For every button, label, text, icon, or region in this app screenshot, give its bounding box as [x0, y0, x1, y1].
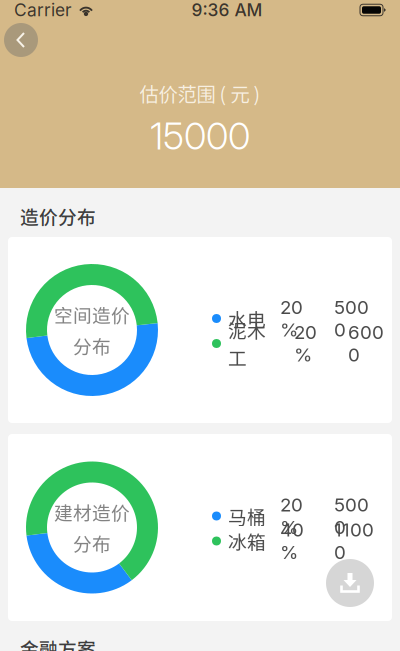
staticText: 15000: [150, 113, 250, 159]
button[interactable]: Back: [4, 23, 38, 57]
staticText: 分布: [73, 529, 111, 556]
staticText: 分布: [73, 332, 111, 359]
staticText: 造价分布: [20, 202, 96, 229]
staticText: 泥木工: [228, 316, 266, 371]
staticText: 建材造价: [54, 498, 130, 525]
staticText: 金融方案: [20, 634, 96, 651]
staticText: 马桶: [228, 502, 266, 529]
staticText: 20%: [294, 321, 317, 366]
staticText: 5000: [334, 493, 369, 539]
staticText: 9:36 AM: [191, 0, 262, 20]
staticText: 5000: [334, 296, 369, 341]
staticText: 冰箱: [228, 527, 266, 554]
staticText: 20%: [280, 296, 303, 341]
staticText: 估价范围 ( 元 ): [139, 79, 260, 107]
staticText: 水电: [228, 305, 266, 332]
staticText: 40%: [280, 518, 304, 564]
staticText: 6000: [348, 321, 384, 366]
staticText: 11000: [334, 518, 374, 564]
staticText: 空间造价: [54, 301, 130, 328]
button[interactable]: Download: [326, 559, 374, 607]
staticText: 20%: [280, 493, 303, 539]
staticText: Carrier: [14, 0, 72, 20]
